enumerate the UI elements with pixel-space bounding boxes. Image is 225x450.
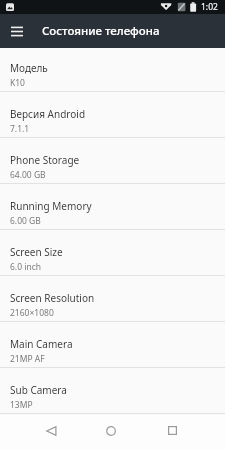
staticText: 21MP AF — [10, 353, 45, 365]
staticText: 64.00 GB — [10, 169, 46, 181]
button[interactable]: Phone Storage — [0, 138, 225, 184]
button[interactable]: Версия Android — [0, 92, 225, 138]
button[interactable] — [0, 415, 81, 450]
button[interactable]: Main Camera — [0, 322, 225, 368]
staticText: 6.0 inch — [10, 261, 41, 273]
staticText: K10 — [10, 77, 25, 89]
staticText: Версия Android — [10, 107, 86, 121]
staticText: Phone Storage — [10, 153, 80, 167]
button[interactable]: Sub Camera — [0, 368, 225, 414]
staticText: Running Memory — [10, 199, 92, 213]
staticText: Состояние телефона — [42, 23, 160, 39]
button[interactable] — [0, 15, 33, 48]
staticText: 13MP — [10, 399, 33, 411]
staticText: Main Camera — [10, 337, 73, 351]
staticText: 1:02 — [201, 1, 218, 13]
staticText: 2160×1080 — [10, 307, 54, 319]
button[interactable]: Running Memory — [0, 184, 225, 230]
staticText: Модель — [10, 61, 48, 75]
button[interactable] — [81, 415, 141, 450]
button[interactable]: Модель — [0, 48, 225, 92]
staticText: Screen Resolution — [10, 291, 95, 305]
staticText: 6.00 GB — [10, 215, 41, 227]
staticText: Sub Camera — [10, 383, 67, 397]
button[interactable] — [141, 415, 225, 450]
staticText: Screen Size — [10, 245, 63, 259]
button[interactable]: Screen Resolution — [0, 276, 225, 322]
staticText: 7.1.1 — [10, 123, 30, 135]
button[interactable]: Screen Size — [0, 230, 225, 276]
